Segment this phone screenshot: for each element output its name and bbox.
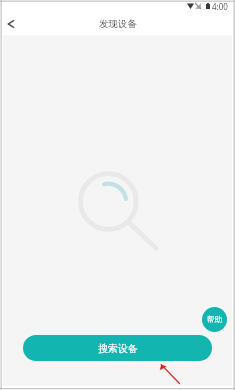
staticText: 帮助	[207, 315, 222, 324]
button[interactable]: 帮助	[202, 307, 227, 332]
staticText: 搜索设备	[98, 342, 138, 355]
staticText: 4:00	[212, 1, 228, 12]
button[interactable]: 搜索设备	[23, 335, 212, 361]
staticText: 发现设备	[99, 18, 137, 30]
button[interactable]: Back	[0, 12, 23, 36]
